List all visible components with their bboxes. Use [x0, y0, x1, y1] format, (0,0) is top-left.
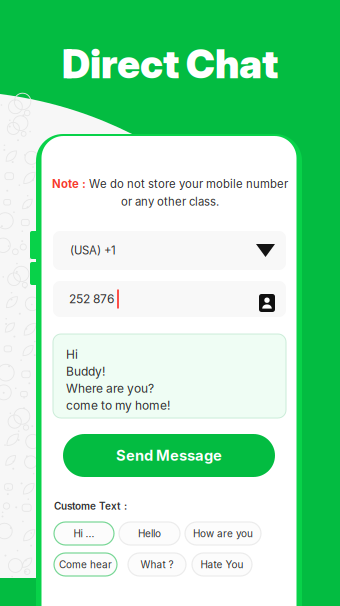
button[interactable]: Hi ... [54, 522, 114, 545]
staticText: Hi [66, 347, 78, 362]
button[interactable]: What ? [128, 553, 186, 576]
button[interactable]: Come hear [54, 553, 117, 576]
staticText: We do not store your mobile number [86, 177, 288, 191]
button[interactable]: How are you [185, 522, 261, 545]
staticText: or any other class. [121, 195, 219, 208]
staticText: Hi ... [73, 527, 94, 540]
button[interactable]: Hello [119, 522, 180, 545]
staticText: (USA) +1 [70, 244, 116, 257]
staticText: come to my home! [66, 398, 170, 413]
staticText: Note : [52, 177, 86, 191]
staticText: Direct Chat [62, 40, 278, 88]
button[interactable]: Hate You [192, 553, 252, 576]
staticText: Send Message [116, 447, 222, 464]
staticText: Hello [138, 527, 161, 540]
button[interactable]: Send Message [63, 434, 275, 477]
staticText: 252 876 [69, 292, 114, 306]
staticText: How are you [193, 527, 253, 540]
staticText: Hate You [200, 558, 243, 571]
button[interactable]: 252 876 [53, 281, 286, 317]
staticText: Come hear [59, 558, 112, 571]
staticText: Buddy! [66, 364, 105, 379]
staticText: Custome Text : [54, 500, 127, 512]
staticText: Where are you? [66, 381, 154, 396]
button[interactable]: (USA) +1 [53, 231, 286, 270]
staticText: What ? [140, 558, 173, 571]
